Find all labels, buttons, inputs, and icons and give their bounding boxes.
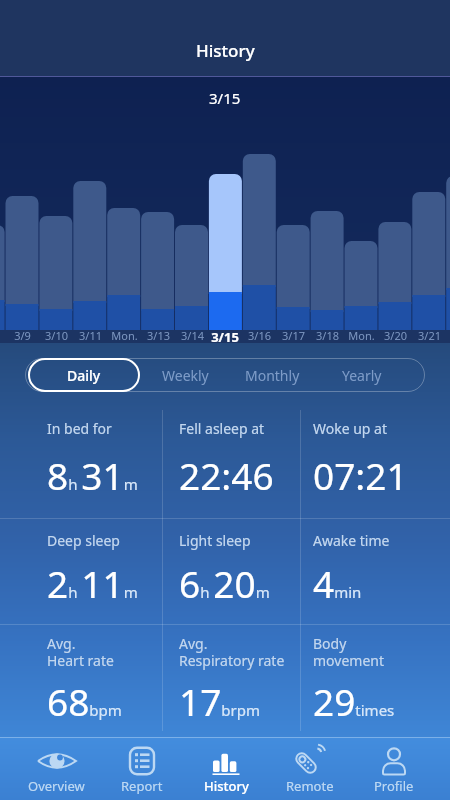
button[interactable]: History <box>184 747 268 800</box>
staticText: Yearly <box>342 366 382 385</box>
button[interactable]: Monthly <box>230 358 314 392</box>
button[interactable]: 3/13 <box>138 328 178 343</box>
button[interactable]: Woke up at <box>313 419 450 518</box>
button[interactable]: Yearly <box>314 358 410 392</box>
button[interactable]: 3/15 <box>205 328 245 343</box>
button[interactable]: 3/20 <box>375 328 415 343</box>
button[interactable]: Profile <box>352 747 436 800</box>
staticText: 3/16 <box>248 328 271 343</box>
staticText: Woke up at <box>313 419 388 438</box>
staticText: 6h 20m <box>179 558 270 608</box>
staticText: Avg. Heart rate <box>47 634 114 670</box>
button[interactable]: Mon. <box>104 328 144 343</box>
button[interactable]: Awake time <box>313 531 450 624</box>
staticText: Daily <box>67 366 101 385</box>
button[interactable]: 3/17 <box>273 328 313 343</box>
staticText: Awake time <box>313 531 390 550</box>
staticText: 3/17 <box>282 328 305 343</box>
staticText: 22:46 <box>179 450 274 500</box>
staticText: 3/9 <box>14 328 31 343</box>
staticText: Light sleep <box>179 531 251 550</box>
button[interactable]: Deep sleep <box>47 531 162 624</box>
staticText: 2h 11m <box>47 558 138 608</box>
button[interactable]: Report <box>99 747 184 800</box>
button[interactable]: 3/16 <box>239 328 279 343</box>
button[interactable]: 3/14 <box>172 328 212 343</box>
staticText: 3/18 <box>316 328 339 343</box>
button[interactable]: Daily <box>28 358 140 392</box>
staticText: Profile <box>374 777 414 795</box>
button[interactable]: In bed for <box>47 419 162 518</box>
button[interactable]: Weekly <box>140 358 230 392</box>
button[interactable]: Avg. Heart rate <box>47 634 162 737</box>
staticText: Deep sleep <box>47 531 120 550</box>
staticText: Remote <box>286 777 334 795</box>
staticText: 17brpm <box>179 676 260 726</box>
button[interactable]: Overview <box>14 747 99 800</box>
staticText: 3/15 <box>209 88 241 108</box>
staticText: 68bpm <box>47 676 122 726</box>
staticText: 3/21 <box>418 328 441 343</box>
button[interactable]: 3/21 <box>409 328 449 343</box>
staticText: Fell asleep at <box>179 419 265 438</box>
staticText: Overview <box>28 777 85 795</box>
button[interactable]: Remote <box>268 747 352 800</box>
staticText: 8h 31m <box>47 450 138 500</box>
staticText: Report <box>121 777 163 795</box>
button[interactable]: Avg. Respiratory rate <box>179 634 300 737</box>
staticText: Avg. Respiratory rate <box>179 634 285 670</box>
staticText: Weekly <box>162 366 209 385</box>
button[interactable]: Fell asleep at <box>179 419 300 518</box>
button[interactable]: 3/9 <box>2 328 42 343</box>
button[interactable]: Mon. <box>341 328 381 343</box>
button[interactable]: 3/10 <box>36 328 76 343</box>
button[interactable]: 3/18 <box>307 328 347 343</box>
staticText: 3/11 <box>79 328 102 343</box>
staticText: 3/20 <box>384 328 407 343</box>
staticText: 3/14 <box>181 328 204 343</box>
staticText: 3/13 <box>147 328 170 343</box>
staticText: Mon. <box>111 328 138 343</box>
staticText: 4min <box>313 558 362 608</box>
button[interactable]: Body movement <box>313 634 450 737</box>
staticText: 07:21 <box>313 450 408 500</box>
staticText: History <box>204 777 249 795</box>
button[interactable]: Light sleep <box>179 531 300 624</box>
staticText: 3/10 <box>45 328 68 343</box>
staticText: History <box>196 39 255 62</box>
staticText: Mon. <box>348 328 375 343</box>
staticText: 3/15 <box>211 328 239 343</box>
staticText: In bed for <box>47 419 112 438</box>
staticText: Body movement <box>313 634 384 670</box>
staticText: 29times <box>313 676 395 726</box>
button[interactable]: 3/11 <box>70 328 110 343</box>
staticText: Monthly <box>245 366 300 385</box>
